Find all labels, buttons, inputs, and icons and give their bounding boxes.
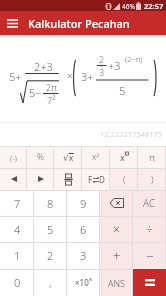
staticText: 7: [14, 196, 21, 211]
staticText: AC: [143, 196, 156, 210]
button[interactable]: 9: [67, 190, 100, 216]
button[interactable]: %: [27, 146, 54, 168]
button[interactable]: ,: [34, 269, 67, 296]
staticText: 1: [14, 248, 21, 263]
staticText: +3: [108, 58, 121, 73]
staticText: 2π: [46, 81, 57, 93]
staticText: x: [120, 151, 125, 163]
staticText: 3+: [81, 69, 94, 84]
button[interactable]: 3: [67, 242, 100, 269]
button[interactable]: 7: [0, 190, 34, 216]
button[interactable]: ÷: [133, 216, 166, 242]
staticText: 8: [47, 196, 54, 211]
button[interactable]: 0: [0, 269, 34, 296]
staticText: √: [63, 153, 69, 163]
staticText: 4: [14, 222, 21, 237]
staticText: x²: [92, 151, 100, 163]
staticText: ,: [49, 275, 52, 290]
button[interactable]: 5: [34, 216, 67, 242]
staticText: ×10: [75, 277, 89, 288]
staticText: 22:57: [144, 1, 164, 11]
staticText: ): [151, 173, 154, 186]
button[interactable]: (: [110, 168, 138, 190]
staticText: ÷: [146, 221, 153, 237]
button[interactable]: 1: [0, 242, 34, 269]
staticText: F: [88, 174, 93, 185]
staticText: Kalkulator Pecahan: [28, 16, 130, 31]
staticText: −: [146, 247, 154, 265]
staticText: 2+3: [34, 59, 53, 74]
staticText: 2: [99, 53, 105, 65]
staticText: ANS: [108, 277, 125, 289]
staticText: %: [37, 151, 44, 163]
staticText: +: [113, 247, 121, 265]
button[interactable]: 4: [0, 216, 34, 242]
staticText: 9: [80, 196, 87, 211]
button[interactable]: ×10: [67, 269, 100, 296]
button[interactable]: −: [133, 242, 166, 269]
button[interactable]: AC: [133, 190, 166, 216]
staticText: ×: [67, 69, 73, 83]
button[interactable]: π: [138, 146, 166, 168]
staticText: (-): [10, 152, 18, 163]
staticText: 0: [14, 275, 21, 290]
button[interactable]: 8: [34, 190, 67, 216]
staticText: 46%: [122, 2, 135, 11]
staticText: 5+: [9, 69, 22, 84]
button[interactable]: [100, 190, 133, 216]
button[interactable]: ): [138, 168, 166, 190]
button[interactable]: 6: [67, 216, 100, 242]
staticText: x: [69, 152, 74, 163]
staticText: 7²: [47, 94, 56, 106]
button[interactable]: √: [54, 146, 82, 168]
button[interactable]: (-): [0, 146, 27, 168]
button[interactable]: x: [110, 146, 138, 168]
staticText: x: [89, 275, 93, 283]
staticText: 5: [119, 83, 126, 98]
staticText: ×: [113, 221, 120, 237]
staticText: 3: [80, 248, 87, 263]
staticText: 3: [99, 66, 105, 78]
button[interactable]: 2: [34, 242, 67, 269]
staticText: π: [149, 151, 155, 164]
staticText: D: [99, 174, 105, 185]
staticText: (: [123, 173, 126, 186]
button[interactable]: [133, 269, 166, 296]
button[interactable]: F: [82, 168, 110, 190]
button[interactable]: ×: [100, 216, 133, 242]
button[interactable]: [7, 19, 18, 28]
staticText: 5: [47, 222, 54, 237]
button[interactable]: [0, 168, 27, 190]
button[interactable]: [54, 168, 82, 190]
staticText: 12,227217548175: [100, 129, 163, 139]
button[interactable]: x²: [82, 146, 110, 168]
staticText: 6: [80, 222, 87, 237]
button[interactable]: +: [100, 242, 133, 269]
button[interactable]: [27, 168, 54, 190]
staticText: 2: [47, 248, 54, 263]
button[interactable]: ANS: [100, 269, 133, 296]
staticText: 5−: [29, 85, 42, 100]
staticText: (2−π): [125, 54, 143, 64]
